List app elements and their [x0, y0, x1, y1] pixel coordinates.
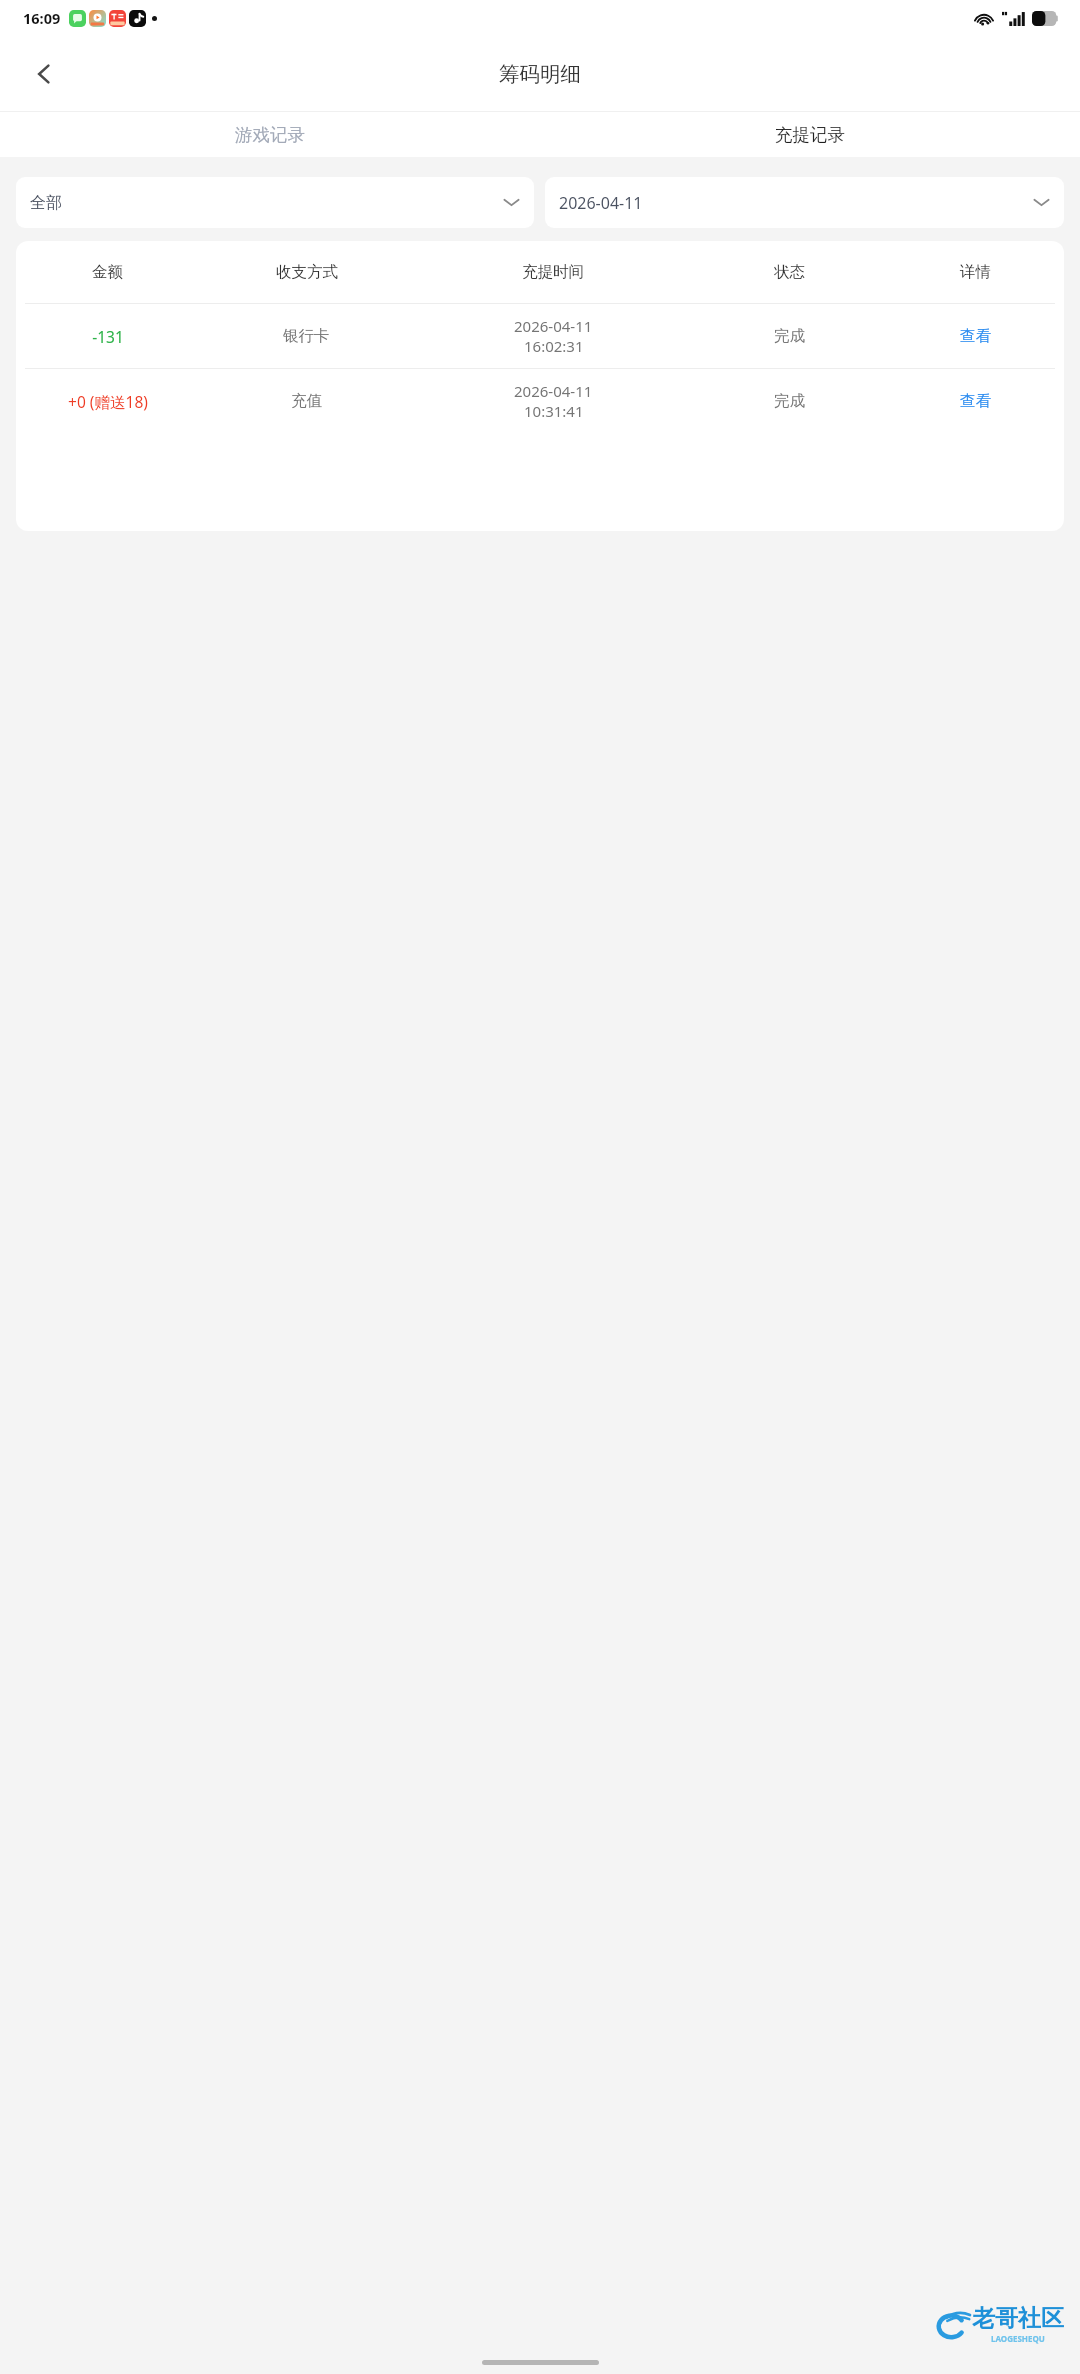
staticText: 收支方式 [276, 262, 338, 282]
button[interactable]: +0 (赠送18) [16, 369, 1064, 433]
staticText: 16:09 [23, 8, 61, 28]
staticText: LAOGESHEQU [991, 2333, 1045, 2344]
staticText: 状态 [774, 262, 805, 282]
staticText: 2026-04-11 [559, 192, 643, 214]
staticText: 10:31:41 [524, 401, 584, 421]
staticText: 完成 [774, 326, 805, 346]
staticText: 充提时间 [522, 262, 584, 282]
button[interactable]: -131 [16, 304, 1064, 368]
staticText: 游戏记录 [235, 124, 305, 146]
staticText: 查看 [960, 326, 991, 346]
staticText: 老哥社区 [972, 2304, 1064, 2333]
button[interactable]: 充提记录 [540, 112, 1080, 157]
staticText: 筹码明细 [499, 61, 581, 87]
staticText: 详情 [960, 262, 991, 282]
button[interactable]: Back [18, 48, 70, 100]
staticText: 16:02:31 [524, 336, 584, 356]
button[interactable]: 全部 [16, 177, 534, 228]
staticText: 完成 [774, 391, 805, 411]
button[interactable]: 查看 [886, 369, 1064, 433]
staticText: 全部 [30, 193, 62, 213]
staticText: +0 (赠送18) [68, 391, 148, 412]
staticText: 2026-04-11 [514, 316, 593, 336]
staticText: 查看 [960, 391, 991, 411]
staticText: -131 [92, 326, 124, 347]
staticText: 充提记录 [775, 124, 845, 146]
button[interactable]: 2026-04-11 [545, 177, 1064, 228]
staticText: 充值 [291, 391, 322, 411]
button[interactable]: 查看 [886, 304, 1064, 368]
staticText: 金额 [92, 262, 123, 282]
staticText: 银行卡 [283, 326, 330, 346]
button[interactable]: 游戏记录 [0, 112, 540, 157]
staticText: 2026-04-11 [514, 381, 593, 401]
